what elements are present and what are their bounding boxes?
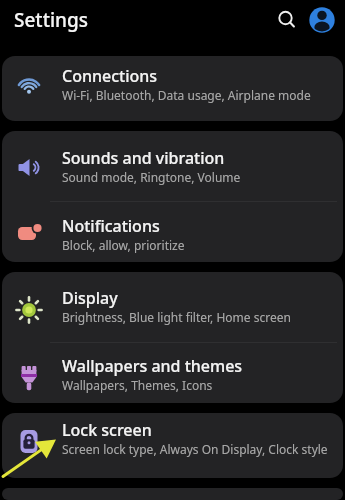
staticText: Settings bbox=[14, 7, 88, 33]
button[interactable]: Connections bbox=[2, 56, 343, 121]
button[interactable] bbox=[272, 6, 300, 34]
staticText: Sounds and vibration bbox=[62, 147, 225, 169]
button[interactable]: Notifications bbox=[2, 197, 343, 262]
staticText: Block, allow, prioritize bbox=[62, 237, 185, 253]
button[interactable]: Display bbox=[2, 272, 343, 337]
staticText: Wallpapers and themes bbox=[62, 355, 243, 377]
staticText: Lock screen bbox=[62, 419, 152, 441]
staticText: Sound mode, Ringtone, Volume bbox=[62, 169, 241, 185]
staticText: Connections bbox=[62, 65, 158, 87]
staticText: Notifications bbox=[62, 215, 160, 237]
button[interactable]: Wallpapers and themes bbox=[2, 338, 343, 403]
button[interactable]: Sounds and vibration bbox=[2, 131, 343, 196]
staticText: Wi-Fi, Bluetooth, Data usage, Airplane m… bbox=[62, 87, 311, 103]
staticText: Display bbox=[62, 287, 118, 309]
staticText: Screen lock type, Always On Display, Clo… bbox=[62, 441, 328, 457]
button[interactable]: Lock screen bbox=[2, 413, 343, 478]
staticText: Brightness, Blue light filter, Home scre… bbox=[62, 309, 291, 325]
staticText: Wallpapers, Themes, Icons bbox=[62, 377, 213, 393]
button[interactable] bbox=[309, 7, 335, 33]
